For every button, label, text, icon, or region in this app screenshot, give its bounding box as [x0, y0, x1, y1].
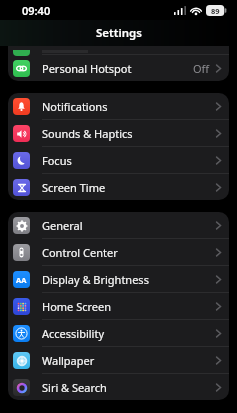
other: Open — [216, 248, 221, 257]
other: Open — [216, 156, 221, 165]
staticText: Settings — [96, 25, 142, 41]
staticText: Accessibility — [42, 326, 216, 341]
other: Open — [216, 302, 221, 311]
staticText: 09:40 — [22, 3, 51, 18]
button[interactable]: AA — [8, 266, 229, 292]
staticText: Focus — [42, 153, 216, 168]
button[interactable]: Control Center — [8, 239, 229, 265]
staticText: Siri & Search — [42, 380, 216, 395]
other: Open — [216, 129, 221, 138]
staticText: 89 — [211, 6, 220, 16]
staticText: Off — [193, 61, 210, 76]
other: Open — [216, 275, 221, 284]
other: Open — [216, 183, 221, 192]
button[interactable]: Wallpaper — [8, 347, 229, 373]
staticText: Wallpaper — [42, 353, 216, 368]
staticText: Display & Brightness — [42, 272, 216, 287]
staticText: Notifications — [42, 99, 216, 114]
other: Open — [216, 356, 221, 365]
staticText: Control Center — [42, 245, 216, 260]
other: Open — [216, 102, 221, 111]
button[interactable]: Notifications — [8, 93, 229, 119]
staticText: Sounds & Haptics — [42, 126, 216, 141]
button[interactable]: Screen Time — [8, 174, 229, 200]
other: Open — [216, 221, 221, 230]
button[interactable]: Home Screen — [8, 293, 229, 319]
staticText: Personal Hotspot — [42, 61, 193, 76]
staticText: Screen Time — [42, 180, 216, 195]
button[interactable]: Focus — [8, 147, 229, 173]
other: Open — [216, 64, 221, 73]
button[interactable]: Sounds & Haptics — [8, 120, 229, 146]
button[interactable]: Accessibility — [8, 320, 229, 346]
button[interactable]: General — [8, 212, 229, 238]
other: Open — [216, 329, 221, 338]
staticText: Home Screen — [42, 299, 216, 314]
button[interactable]: Siri & Search — [8, 374, 229, 400]
other: Open — [216, 383, 221, 392]
staticText: General — [42, 218, 216, 233]
button[interactable] — [8, 46, 229, 54]
staticText: AA — [16, 275, 27, 285]
button[interactable]: Personal Hotspot — [8, 55, 229, 81]
